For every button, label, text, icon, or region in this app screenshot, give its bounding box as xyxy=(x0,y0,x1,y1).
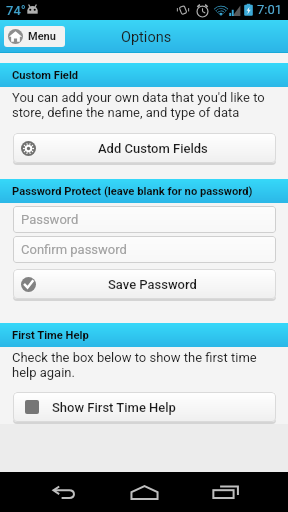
staticText: Options xyxy=(121,29,172,46)
button[interactable]: Recent apps xyxy=(193,472,257,512)
button[interactable]: Confirm password xyxy=(13,236,276,263)
button[interactable]: Add Custom Fields xyxy=(13,133,276,163)
staticText: Confirm password xyxy=(21,242,127,257)
staticText: First Time Help xyxy=(12,329,89,342)
staticText: Save Password xyxy=(108,277,197,292)
staticText: Custom Field xyxy=(12,69,79,82)
button[interactable]: Back xyxy=(32,472,96,512)
button[interactable]: Password xyxy=(13,206,276,233)
staticText: Password xyxy=(21,212,79,227)
button[interactable]: Home xyxy=(112,472,176,512)
button[interactable]: Show First Time Help xyxy=(13,392,276,422)
staticText: 7:01 xyxy=(257,2,283,17)
button[interactable]: Menu xyxy=(4,26,65,47)
staticText: Check the box below to show the first ti… xyxy=(12,350,257,380)
button[interactable]: Save Password xyxy=(13,269,276,299)
staticText: You can add your own data that you'd lik… xyxy=(12,90,265,120)
staticText: 74° xyxy=(6,3,26,18)
staticText: Menu xyxy=(28,30,56,43)
staticText: Add Custom Fields xyxy=(98,141,208,156)
staticText: Show First Time Help xyxy=(52,400,176,415)
staticText: Password Protect (leave blank for no pas… xyxy=(12,185,253,198)
